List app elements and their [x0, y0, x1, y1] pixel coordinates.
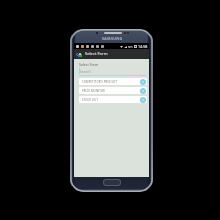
- staticText: Search: [80, 69, 91, 73]
- button[interactable]: Navigate up: [75, 50, 78, 58]
- button[interactable]: Search: [79, 69, 147, 76]
- staticText: Select Form: [79, 62, 99, 67]
- staticText: Select Form: [85, 51, 108, 57]
- staticText: PRICE MONITOR: [82, 89, 140, 93]
- staticText: SAMSUNG: [102, 36, 123, 41]
- button[interactable]: PRICE MONITOR: [79, 87, 147, 94]
- button[interactable]: STOCK OUT: [79, 96, 147, 103]
- button[interactable]: Home: [104, 180, 120, 185]
- button[interactable]: COMPETITOR'S PRODUCT: [79, 78, 147, 85]
- staticText: 14:58: [138, 44, 148, 49]
- staticText: sm: [128, 45, 133, 49]
- staticText: STOCK OUT: [82, 98, 140, 102]
- staticText: COMPETITOR'S PRODUCT: [82, 80, 140, 84]
